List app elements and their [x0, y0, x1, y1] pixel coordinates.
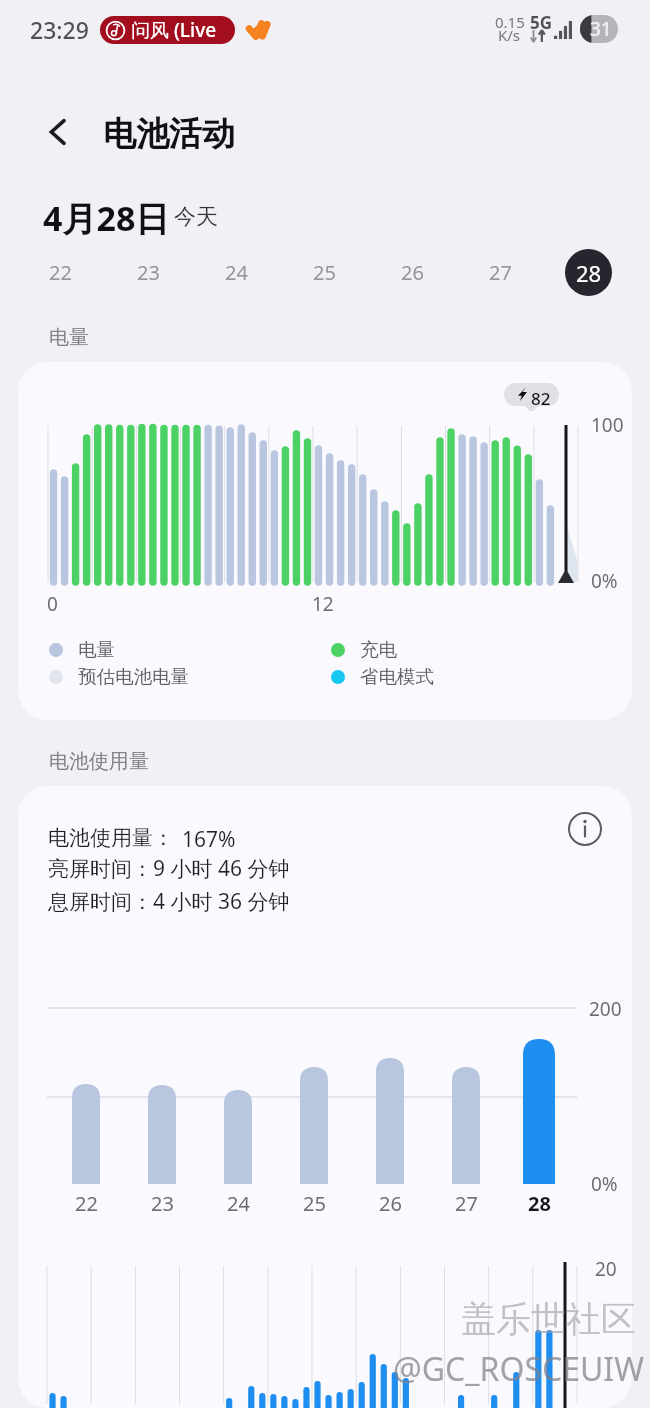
staticText: 200: [589, 996, 622, 1022]
staticText: 息屏时间：4 小时 36 分钟: [48, 887, 290, 916]
staticText: 4月28日: [43, 195, 170, 241]
staticText: 电池使用量：: [48, 825, 174, 851]
staticText: 100: [591, 412, 624, 438]
staticText: 25: [313, 259, 336, 286]
staticText: 充电: [360, 638, 397, 661]
staticText: 28: [576, 258, 602, 288]
staticText: 26: [401, 259, 424, 286]
staticText: 0%: [591, 568, 618, 594]
staticText: 电量: [78, 638, 115, 661]
staticText: 问风 (Live: [131, 17, 217, 43]
staticText: 24: [227, 1190, 250, 1214]
staticText: 亮屏时间：9 小时 46 分钟: [48, 854, 290, 883]
staticText: 25: [303, 1190, 326, 1214]
button[interactable]: 25: [298, 246, 350, 298]
staticText: 20: [595, 1256, 617, 1282]
staticText: 23:29: [30, 14, 89, 45]
staticText: 31: [590, 16, 612, 42]
staticText: 167%: [182, 825, 236, 854]
staticText: 0: [47, 591, 58, 617]
staticText: 电池活动: [103, 113, 235, 155]
staticText: 预估电池电量: [78, 665, 189, 688]
staticText: 27: [455, 1190, 478, 1214]
staticText: 22: [75, 1190, 98, 1214]
staticText: 82: [531, 387, 551, 410]
button[interactable]: Information: [562, 806, 608, 852]
button[interactable]: 22: [34, 246, 86, 298]
button[interactable]: 26: [386, 246, 438, 298]
button[interactable]: 23: [122, 246, 174, 298]
staticText: 23: [151, 1190, 174, 1214]
staticText: K/s: [498, 25, 521, 45]
button[interactable]: 24: [210, 246, 262, 298]
staticText: @GC_ROSCEUIW: [393, 1347, 644, 1391]
staticText: 23: [137, 259, 160, 286]
staticText: 0%: [591, 1171, 618, 1197]
staticText: 5G: [530, 11, 553, 34]
button[interactable]: Back: [34, 108, 82, 156]
button[interactable]: 28: [562, 246, 614, 298]
staticText: 省电模式: [360, 665, 434, 688]
staticText: 26: [379, 1190, 402, 1214]
staticText: 盖乐世社区: [461, 1297, 636, 1341]
staticText: 0.15: [495, 12, 525, 32]
staticText: 今天: [174, 203, 218, 231]
staticText: 28: [528, 1190, 551, 1214]
button[interactable]: 27: [474, 246, 526, 298]
staticText: 27: [489, 259, 512, 286]
staticText: 电量: [49, 325, 89, 350]
staticText: 22: [49, 259, 72, 286]
staticText: 电池使用量: [49, 749, 149, 774]
staticText: 24: [225, 259, 248, 286]
staticText: 12: [312, 591, 334, 617]
